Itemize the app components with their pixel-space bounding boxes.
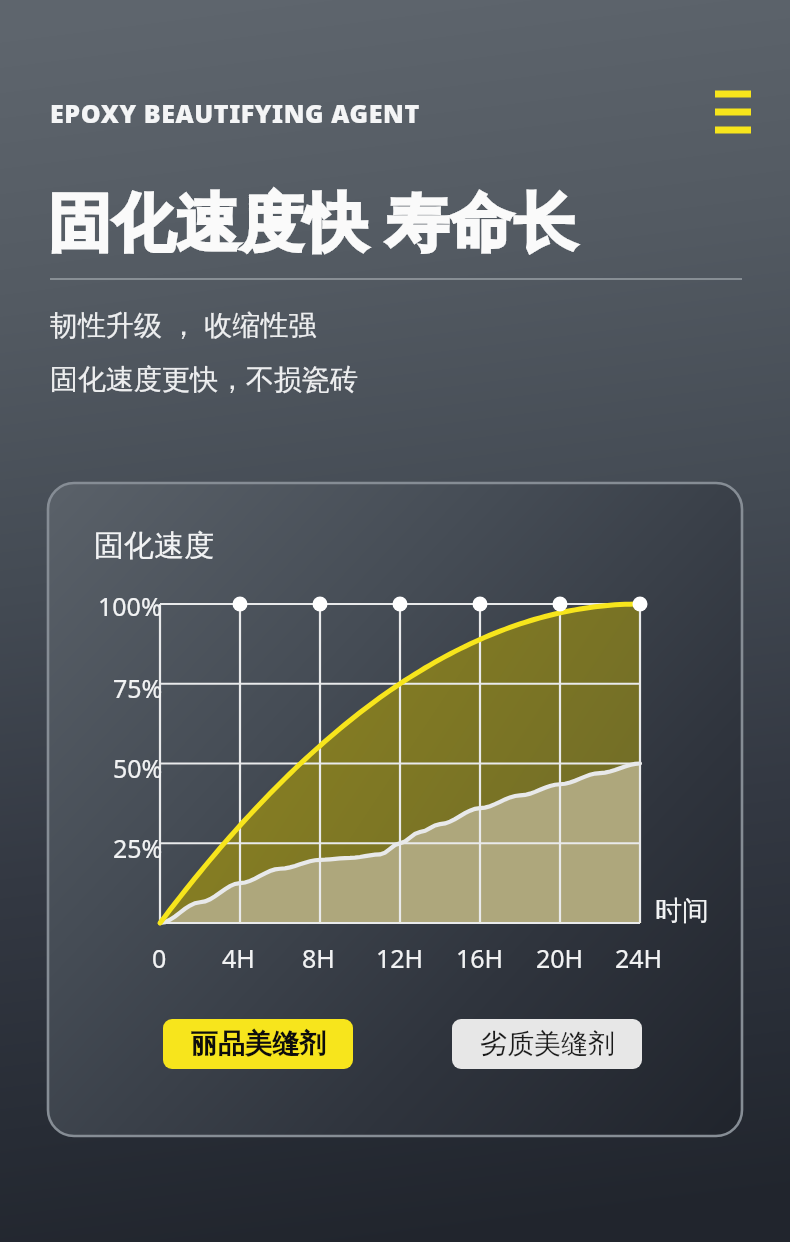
staticText: EPOXY BEAUTIFYING AGENT <box>50 96 420 130</box>
staticText: 25% <box>113 831 163 865</box>
staticText: 时间 <box>655 894 709 928</box>
staticText: 16H <box>456 941 504 975</box>
staticText: 75% <box>113 671 163 705</box>
staticText: 100% <box>98 589 162 623</box>
staticText: 12H <box>376 941 424 975</box>
button[interactable]: 丽品美缝剂 <box>163 1019 353 1069</box>
staticText: 固化速度 <box>94 527 214 565</box>
staticText: 固化速度更快，不损瓷砖 <box>50 362 358 397</box>
staticText: 50% <box>113 751 163 785</box>
staticText: 0 <box>152 941 167 975</box>
staticText: 固化速度快 寿命长 <box>48 178 578 264</box>
staticText: 韧性升级 ， 收缩性强 <box>50 305 317 343</box>
button[interactable]: 劣质美缝剂 <box>452 1019 642 1069</box>
staticText: 8H <box>302 941 335 975</box>
staticText: 24H <box>615 941 663 975</box>
staticText: 丽品美缝剂 <box>191 1027 326 1061</box>
button[interactable]: EPOXY BEAUTIFYING AGENT <box>50 96 420 130</box>
staticText: 20H <box>536 941 584 975</box>
staticText: 劣质美缝剂 <box>480 1027 615 1061</box>
staticText: 4H <box>222 941 255 975</box>
button[interactable]: Menu <box>712 94 754 130</box>
